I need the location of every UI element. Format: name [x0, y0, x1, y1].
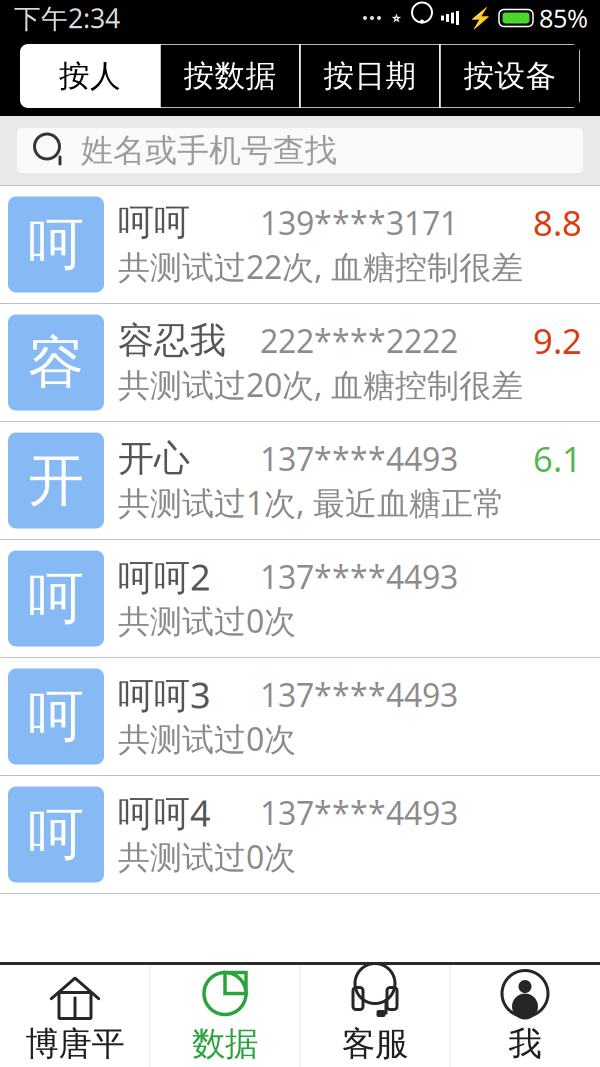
button[interactable]: 按人: [20, 44, 160, 108]
button[interactable]: 按日期: [300, 44, 440, 108]
button[interactable]: 容: [0, 304, 600, 422]
staticText: 客服: [342, 1023, 408, 1064]
staticText: 呵: [28, 682, 84, 751]
staticText: 6.1: [533, 435, 582, 481]
staticText: 85%: [539, 1, 588, 35]
staticText: 共测试过1次, 最近血糖正常: [118, 481, 505, 524]
staticText: 开心: [118, 436, 190, 481]
staticText: 呵: [28, 564, 84, 633]
staticText: ⭒: [391, 8, 402, 28]
staticText: 博唐平: [25, 1023, 124, 1064]
staticText: 开: [28, 446, 84, 515]
staticText: 呵: [28, 210, 84, 279]
staticText: 容: [28, 328, 84, 397]
staticText: 137****4493: [260, 555, 458, 598]
staticText: 按设备: [463, 57, 556, 95]
staticText: 共测试过0次: [118, 717, 296, 760]
button[interactable]: 呵: [0, 658, 600, 776]
button[interactable]: 姓名或手机号查找: [17, 128, 583, 173]
button[interactable]: 呵: [0, 540, 600, 658]
staticText: 222****2222: [260, 319, 458, 362]
staticText: 共测试过0次: [118, 835, 296, 878]
staticText: 共测试过0次: [118, 599, 296, 642]
button[interactable]: 开: [0, 422, 600, 540]
staticText: 137****4493: [260, 437, 458, 480]
button[interactable]: 按设备: [440, 44, 580, 108]
staticText: 呵: [28, 800, 84, 869]
staticText: 呵呵2: [118, 553, 211, 600]
staticText: 按日期: [323, 57, 416, 95]
staticText: 共测试过22次, 血糖控制很差: [118, 245, 523, 288]
staticText: 9.2: [533, 317, 582, 363]
staticText: 呵呵3: [118, 671, 211, 718]
staticText: ⚡: [468, 7, 493, 29]
button[interactable]: 我: [450, 965, 599, 1067]
staticText: 8.8: [533, 199, 582, 245]
staticText: 容忍我: [118, 318, 226, 363]
button[interactable]: 客服: [300, 965, 449, 1067]
button[interactable]: 博唐平: [0, 965, 149, 1067]
staticText: 下午2:34: [14, 0, 120, 36]
staticText: 呵呵: [118, 200, 190, 245]
staticText: 139****3171: [260, 201, 458, 244]
staticText: 我: [508, 1023, 541, 1064]
button[interactable]: 呵: [0, 186, 600, 304]
staticText: 姓名或手机号查找: [81, 131, 337, 170]
staticText: 共测试过20次, 血糖控制很差: [118, 363, 523, 406]
staticText: 数据: [192, 1023, 258, 1064]
staticText: 呵呵4: [118, 789, 211, 836]
staticText: 按人: [59, 57, 121, 95]
staticText: 137****4493: [260, 791, 458, 834]
button[interactable]: 数据: [150, 965, 299, 1067]
staticText: 137****4493: [260, 673, 458, 716]
button[interactable]: 呵: [0, 776, 600, 894]
button[interactable]: 按数据: [160, 44, 300, 108]
staticText: 按数据: [183, 57, 276, 95]
